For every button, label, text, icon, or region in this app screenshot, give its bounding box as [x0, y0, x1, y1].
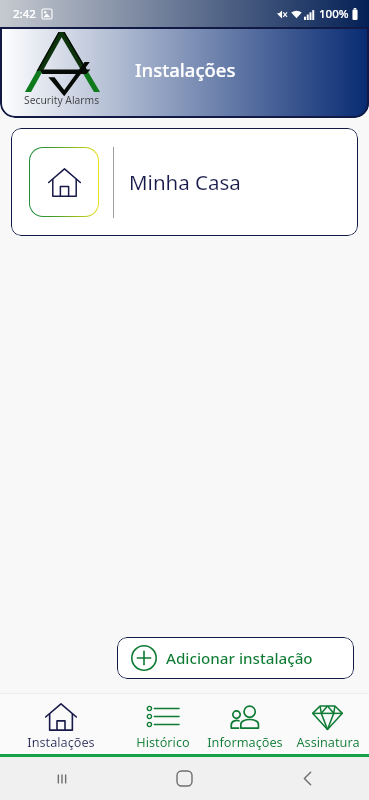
staticText: Minha Casa	[129, 168, 241, 196]
staticText: 100%	[319, 6, 349, 22]
staticText: Instalações	[135, 57, 236, 82]
button[interactable]: Recent apps	[0, 757, 123, 800]
button[interactable]: Adicionar instalação	[117, 637, 354, 679]
button[interactable]: Assinatura	[286, 694, 369, 754]
button[interactable]: Histórico	[122, 694, 204, 754]
staticText: Histórico	[136, 733, 190, 750]
button[interactable]: Home	[123, 757, 246, 800]
button[interactable]: Instalações	[0, 694, 122, 754]
staticText: Assinatura	[296, 733, 360, 750]
staticText: 2:42	[13, 6, 36, 22]
staticText: Security Alarms	[24, 93, 100, 107]
staticText: Informações	[207, 733, 283, 750]
staticText: Instalações	[27, 733, 95, 750]
button[interactable]: Back	[246, 757, 369, 800]
staticText: Adicionar instalação	[166, 648, 313, 669]
button[interactable]: Informações	[204, 694, 286, 754]
button[interactable]: Minha Casa	[11, 128, 358, 236]
